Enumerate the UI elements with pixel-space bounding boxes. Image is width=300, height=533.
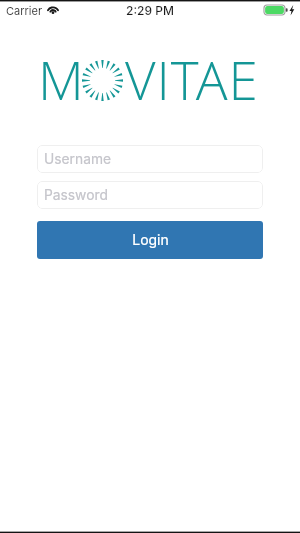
button[interactable]: Password <box>37 181 263 209</box>
staticText: M <box>38 43 84 115</box>
staticText: Carrier <box>6 4 43 17</box>
staticText: VITAE <box>125 43 259 115</box>
staticText: Username <box>44 151 112 168</box>
staticText: 2:29 PM <box>126 3 174 18</box>
button[interactable]: Username <box>37 145 263 173</box>
button[interactable]: Login <box>37 221 263 259</box>
staticText: Password <box>44 187 108 204</box>
staticText: Login <box>132 231 169 248</box>
